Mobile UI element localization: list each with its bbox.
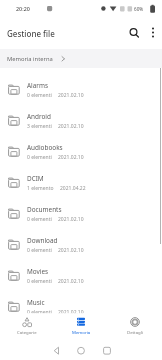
button[interactable]: Alarms: [0, 74, 162, 105]
staticText: 2021.02.10: [58, 309, 84, 316]
staticText: 0 elementi: [27, 309, 52, 316]
staticText: 0 elementi: [27, 92, 52, 99]
staticText: DCIM: [27, 174, 44, 183]
staticText: Android: [27, 112, 51, 121]
staticText: Download: [27, 236, 58, 245]
staticText: 2021.02.10: [58, 154, 84, 161]
button[interactable]: Memoria: [54, 313, 108, 335]
staticText: Movies: [27, 267, 49, 276]
staticText: Memoria: [72, 329, 91, 335]
staticText: 2021.02.10: [58, 92, 84, 99]
staticText: 0 elementi: [27, 278, 52, 285]
button[interactable]: Categorie: [0, 313, 54, 335]
staticText: 2021.02.10: [58, 278, 84, 285]
button[interactable]: Music: [0, 291, 162, 322]
staticText: 0 elementi: [27, 154, 52, 161]
staticText: 2021.04.22: [60, 185, 86, 192]
staticText: Music: [27, 298, 45, 307]
button[interactable]: [126, 25, 142, 41]
button[interactable]: Audiobooks: [0, 136, 162, 167]
staticText: Memoria interna: [7, 55, 53, 63]
staticText: 0 elementi: [27, 247, 52, 254]
staticText: 2021.02.10: [58, 216, 84, 223]
staticText: 2021.02.10: [58, 123, 84, 130]
button[interactable]: [146, 25, 160, 39]
button[interactable]: Documents: [0, 198, 162, 229]
staticText: Documents: [27, 205, 62, 214]
button[interactable]: Android: [0, 105, 162, 136]
staticText: Categorie: [17, 329, 37, 335]
staticText: 1 elemento: [27, 185, 54, 192]
button[interactable]: Download: [0, 229, 162, 260]
staticText: 3 elementi: [27, 123, 52, 130]
staticText: Dettagli: [127, 329, 143, 335]
staticText: Gestione file: [7, 28, 55, 39]
button[interactable]: Memoria interna: [0, 49, 162, 68]
button[interactable]: DCIM: [0, 167, 162, 198]
staticText: Alarms: [27, 81, 48, 90]
staticText: 20:20: [16, 5, 30, 12]
staticText: 60%: [134, 6, 144, 12]
staticText: 2021.02.10: [58, 247, 84, 254]
staticText: Audiobooks: [27, 143, 63, 152]
button[interactable]: Dettagli: [108, 313, 162, 335]
staticText: 0 elementi: [27, 216, 52, 223]
button[interactable]: Movies: [0, 260, 162, 291]
